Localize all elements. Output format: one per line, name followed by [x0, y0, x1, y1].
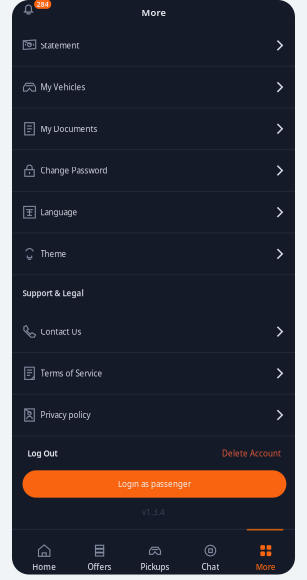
button[interactable]: Home: [16, 530, 72, 574]
button[interactable]: Statement: [12, 25, 295, 67]
staticText: Chat: [201, 562, 219, 572]
staticText: Offers: [88, 562, 112, 572]
button[interactable]: Contact Us: [12, 311, 295, 353]
staticText: My Documents: [40, 123, 97, 134]
staticText: Delete Account: [222, 448, 281, 459]
button[interactable]: More: [238, 530, 293, 574]
staticText: 284: [37, 0, 49, 9]
button[interactable]: Login as passenger: [22, 470, 286, 498]
staticText: Log Out: [27, 448, 57, 459]
button[interactable]: Log Out: [27, 442, 57, 465]
button[interactable]: Privacy policy: [12, 395, 295, 436]
button[interactable]: Chat: [183, 530, 238, 574]
staticText: Home: [32, 562, 56, 572]
staticText: Contact Us: [40, 326, 81, 337]
staticText: v1.3.4: [142, 507, 165, 517]
button[interactable]: Change Password: [12, 150, 295, 192]
button[interactable]: Pickups: [127, 530, 183, 574]
button[interactable]: Terms of Service: [12, 353, 295, 395]
staticText: Support & Legal: [22, 288, 83, 298]
staticText: My Vehicles: [40, 82, 85, 92]
staticText: Pickups: [140, 562, 169, 572]
staticText: Change Password: [40, 165, 107, 176]
staticText: More: [256, 562, 276, 572]
button[interactable]: Offers: [72, 530, 127, 574]
staticText: More: [141, 6, 165, 19]
button[interactable]: Theme: [12, 233, 295, 275]
button[interactable]: Language: [12, 192, 295, 233]
button[interactable]: My Documents: [12, 108, 295, 150]
button[interactable]: My Vehicles: [12, 67, 295, 108]
staticText: Login as passenger: [118, 479, 191, 489]
staticText: Privacy policy: [40, 410, 90, 420]
staticText: Terms of Service: [40, 368, 102, 379]
button[interactable]: Delete Account: [222, 442, 281, 465]
staticText: Language: [40, 207, 77, 217]
button[interactable]: Notifications: [12, 0, 58, 25]
staticText: Theme: [40, 249, 66, 259]
staticText: Statement: [40, 40, 79, 51]
